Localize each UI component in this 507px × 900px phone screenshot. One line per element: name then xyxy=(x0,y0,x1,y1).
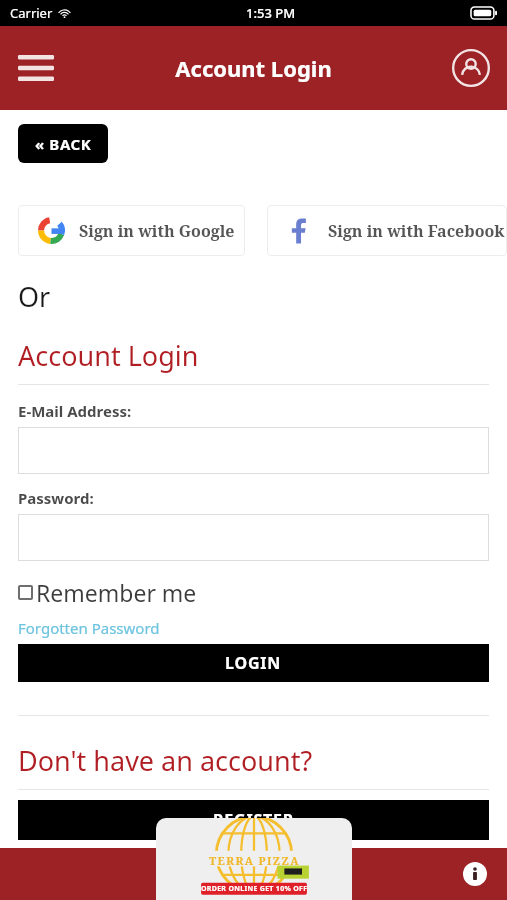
staticText: Account Login xyxy=(18,337,199,374)
staticText: Carrier xyxy=(10,4,53,22)
button[interactable]: Information xyxy=(455,854,495,894)
button[interactable]: Remember me xyxy=(18,577,197,608)
staticText: Remember me xyxy=(36,577,197,608)
button[interactable]: Account xyxy=(447,44,495,92)
staticText: LOGIN xyxy=(225,652,282,674)
staticText: « BACK xyxy=(35,134,92,154)
button[interactable]: Terra Pizza promo xyxy=(156,818,352,900)
button[interactable]: REGISTER xyxy=(18,800,489,840)
staticText: TERRA PIZZA xyxy=(209,853,300,868)
staticText: REGISTER xyxy=(213,809,295,831)
staticText: Or xyxy=(18,278,51,315)
staticText: Don't have an account? xyxy=(18,742,313,779)
button[interactable]: Sign in with Google xyxy=(18,205,245,256)
staticText: Account Login xyxy=(175,53,332,83)
button[interactable]: LOGIN xyxy=(18,644,489,682)
staticText: Sign in with Facebook xyxy=(328,220,505,242)
staticText: 1:53 PM xyxy=(246,4,296,22)
staticText: E-Mail Address: xyxy=(18,401,132,421)
button[interactable]: Forgotten Password xyxy=(18,618,160,638)
staticText: ORDER ONLINE GET 10% OFF xyxy=(201,884,308,894)
button[interactable]: « BACK xyxy=(18,124,108,163)
button[interactable] xyxy=(18,514,489,561)
staticText: Password: xyxy=(18,488,94,508)
button[interactable]: Menu xyxy=(12,44,60,92)
button[interactable]: Sign in with Facebook xyxy=(267,205,507,256)
staticText: Sign in with Google xyxy=(79,220,235,242)
button[interactable] xyxy=(18,427,489,474)
